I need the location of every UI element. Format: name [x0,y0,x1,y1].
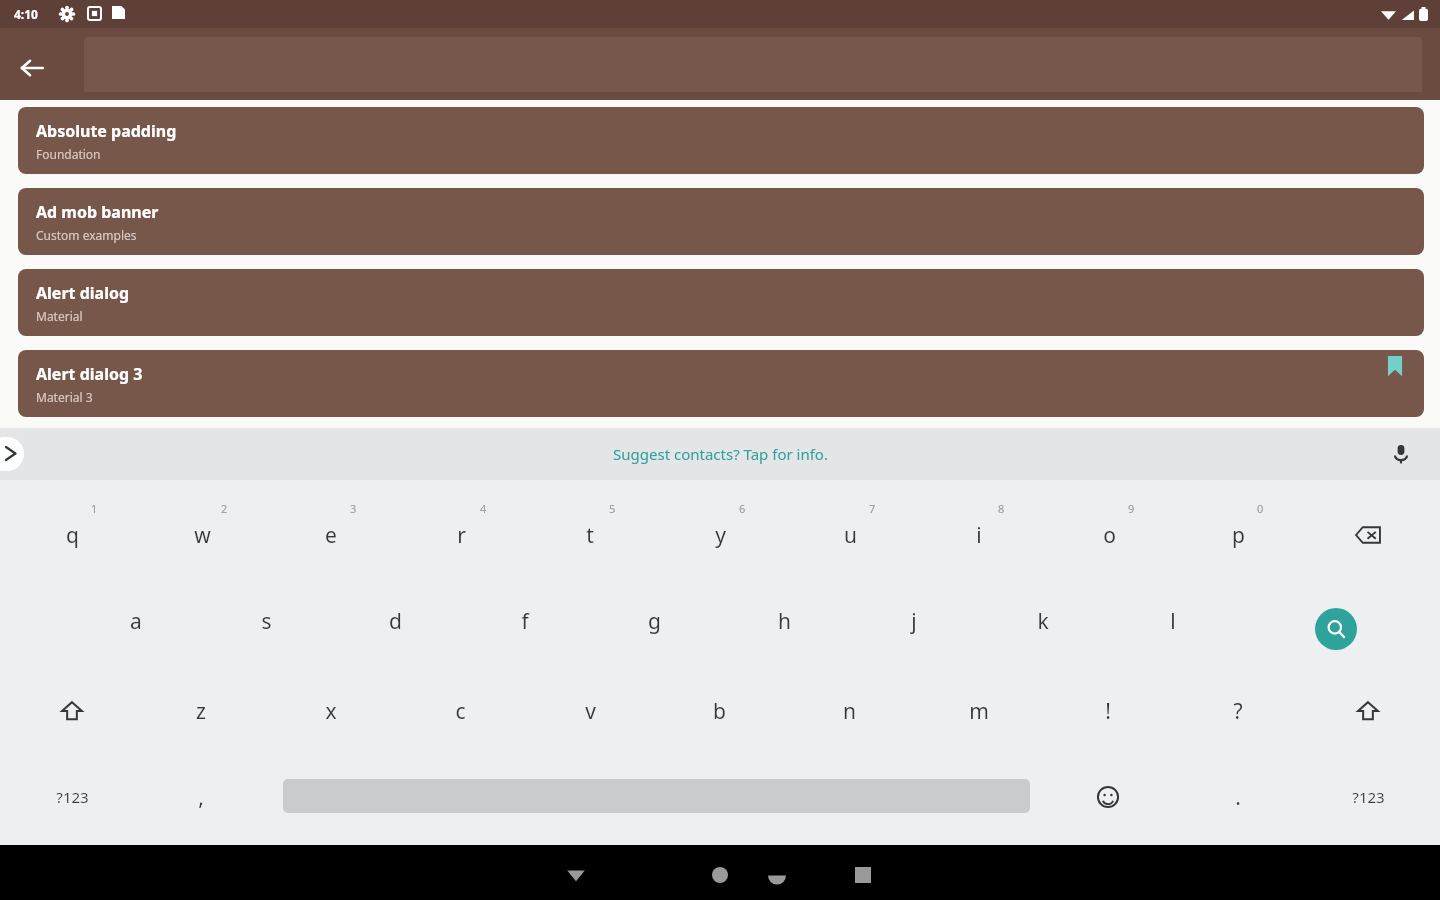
staticText: 4 [480,501,487,516]
staticText: r [457,521,466,550]
button[interactable]: r [406,505,516,565]
button[interactable]: z [146,681,256,741]
staticText: t [586,521,594,550]
button[interactable]: Hide keyboard [552,851,600,899]
staticText: c [455,697,466,726]
staticText: u [844,521,857,550]
button[interactable]: ! [1053,681,1163,741]
button[interactable]: t [535,505,645,565]
button[interactable]: m [924,681,1034,741]
button[interactable]: y [665,505,775,565]
button[interactable]: i [924,505,1034,565]
staticText: q [66,521,79,550]
button[interactable]: e [276,505,386,565]
staticText: 7 [869,501,876,516]
button[interactable]: x [276,681,386,741]
button[interactable] [1322,507,1414,563]
staticText: w [194,521,211,550]
button[interactable]: d [340,591,450,651]
button[interactable]: l [1118,591,1228,651]
button[interactable]: , [146,767,256,827]
button[interactable]: Expand suggestions [0,437,24,471]
staticText: k [1037,607,1049,636]
button[interactable]: b [664,681,774,741]
staticText: b [713,697,726,726]
staticText: j [911,607,917,636]
button[interactable]: Emoji [1062,769,1154,825]
staticText: , [198,783,204,812]
staticText: g [648,607,661,636]
button[interactable]: w [147,505,257,565]
staticText: v [585,697,596,726]
button[interactable]: Alert dialog [18,269,1424,336]
button[interactable]: Home [696,851,744,899]
button[interactable]: u [795,505,905,565]
button[interactable]: Back [8,44,56,92]
staticText: 8 [998,501,1005,516]
button[interactable]: f [470,591,580,651]
staticText: . [1235,783,1241,812]
button[interactable]: ?123 [1313,767,1423,827]
staticText: y [715,521,726,550]
button[interactable]: Shift [26,683,118,739]
button[interactable]: n [794,681,904,741]
button[interactable]: Absolute padding [18,107,1424,174]
button[interactable]: Recents [839,851,887,899]
button[interactable]: k [988,591,1098,651]
button[interactable]: Alert dialog 3 [18,350,1424,417]
button[interactable]: ?123 [17,767,127,827]
button[interactable]: o [1054,505,1164,565]
staticText: 2 [221,501,228,516]
staticText: x [325,697,337,726]
staticText: 5 [609,501,616,516]
staticText: ?123 [56,787,89,807]
staticText: ? [1233,697,1243,726]
staticText: Absolute padding [36,120,177,142]
staticText: m [969,697,989,726]
staticText: 0 [1257,501,1264,516]
button[interactable]: Bookmarked [1384,356,1406,378]
staticText: Custom examples [36,227,137,243]
button[interactable]: Suggest contacts? Tap for info. [613,444,828,464]
button[interactable]: Ad mob banner [18,188,1424,255]
button[interactable]: c [405,681,515,741]
staticText: Alert dialog [36,282,130,304]
staticText: a [130,607,142,636]
button[interactable]: p [1183,505,1293,565]
staticText: e [325,521,337,550]
staticText: 6 [739,501,746,516]
button[interactable]: v [535,681,645,741]
staticText: Alert dialog 3 [36,363,143,385]
button[interactable]: j [859,591,969,651]
button[interactable]: s [211,591,321,651]
button[interactable]: . [1183,767,1293,827]
staticText: ! [1105,697,1111,726]
staticText: s [261,607,272,636]
staticText: h [778,607,791,636]
staticText: d [389,607,402,636]
staticText: Foundation [36,146,101,162]
staticText: n [843,697,856,726]
staticText: 9 [1128,501,1135,516]
staticText: Material [36,308,83,324]
staticText: 1 [91,501,98,516]
button[interactable]: Back [753,851,801,899]
staticText: z [196,697,206,726]
button[interactable]: a [81,591,191,651]
staticText: 3 [350,501,357,516]
button[interactable]: ? [1183,681,1293,741]
staticText: 4:10 [14,6,38,22]
staticText: f [521,607,529,636]
button[interactable]: Shift [1322,683,1414,739]
staticText: ?123 [1352,787,1385,807]
staticText: Ad mob banner [36,201,159,223]
button[interactable]: Voice input [1386,439,1416,469]
staticText: i [976,521,982,550]
staticText: l [1170,607,1176,636]
button[interactable]: q [17,505,127,565]
button[interactable]: g [599,591,709,651]
button[interactable]: Search [1310,603,1362,655]
button[interactable]: h [729,591,839,651]
